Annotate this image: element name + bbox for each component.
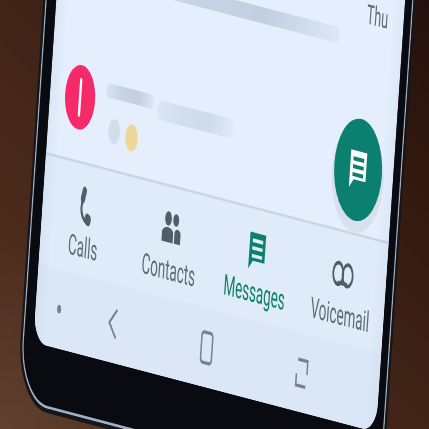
button[interactable]: Back bbox=[88, 300, 132, 344]
button[interactable]: Start new conversation bbox=[331, 119, 385, 218]
button[interactable]: Messages bbox=[220, 224, 294, 314]
button[interactable]: Conversation bbox=[56, 0, 404, 54]
button[interactable]: Recent apps bbox=[282, 352, 326, 396]
button[interactable]: Voicemail bbox=[305, 248, 382, 338]
button[interactable]: Calls bbox=[52, 176, 118, 262]
button[interactable]: Home bbox=[186, 326, 230, 370]
button[interactable]: Contacts bbox=[135, 200, 206, 288]
button[interactable]: Conversation bbox=[56, 55, 404, 140]
